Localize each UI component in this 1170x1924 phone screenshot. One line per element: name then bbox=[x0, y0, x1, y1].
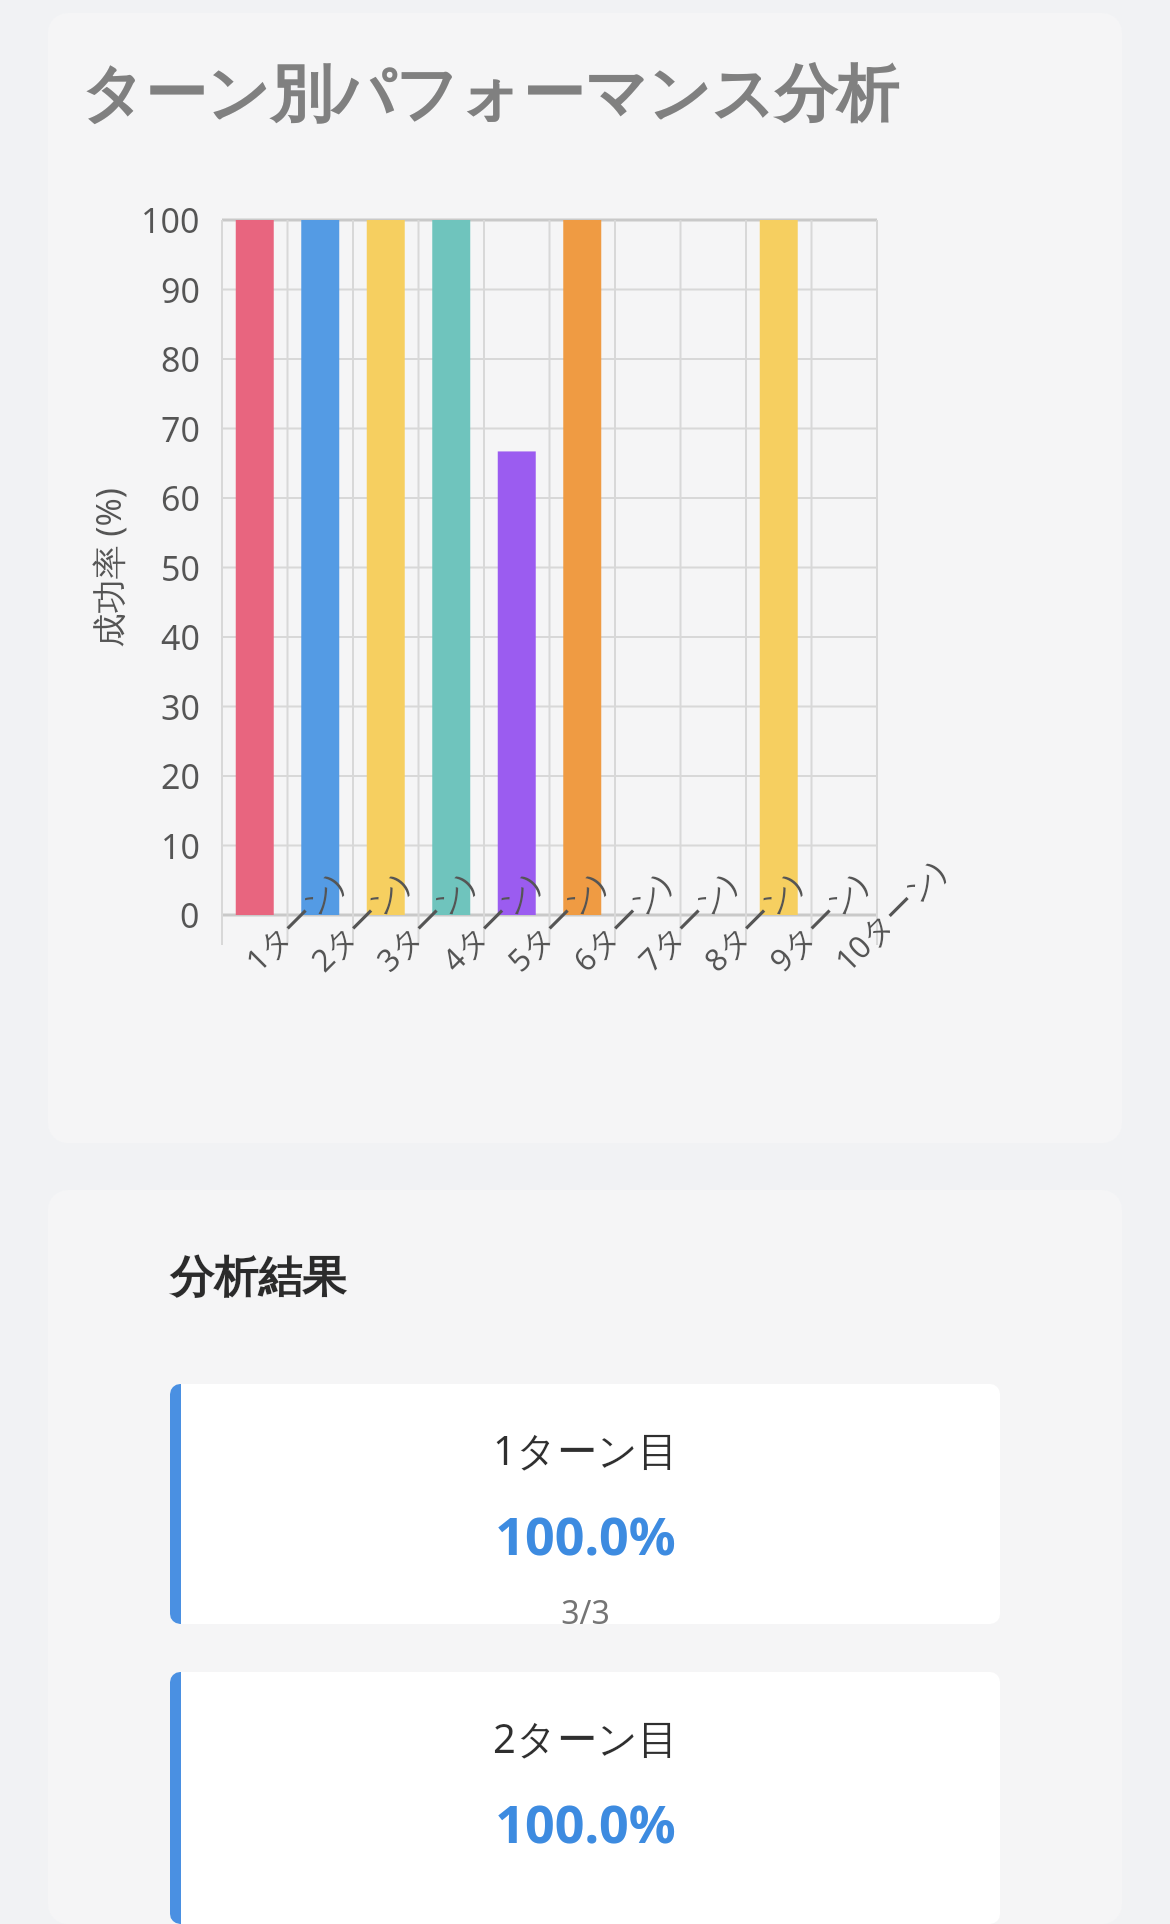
staticText: 100.0% bbox=[495, 1787, 676, 1858]
staticText: 2ターン目 bbox=[493, 1710, 678, 1765]
staticText: 3/3 bbox=[561, 1590, 610, 1624]
staticText: 分析結果 bbox=[170, 1250, 346, 1305]
button[interactable]: 1ターン目 bbox=[170, 1384, 1000, 1624]
staticText: 100.0% bbox=[495, 1499, 676, 1570]
staticText: 1ターン目 bbox=[493, 1422, 678, 1477]
button[interactable]: 2ターン目 bbox=[170, 1672, 1000, 1924]
staticText: ターン別パフォーマンス分析 bbox=[81, 55, 899, 133]
